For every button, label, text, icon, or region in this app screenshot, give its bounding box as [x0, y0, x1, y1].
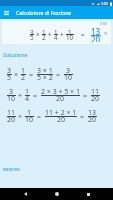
staticText: 3 — [9, 87, 14, 97]
staticText: 2 — [42, 33, 46, 41]
staticText: Calcolatore di Frazione — [16, 9, 72, 16]
staticText: = — [33, 91, 38, 101]
staticText: 4 — [25, 94, 30, 104]
staticText: 20 — [91, 34, 101, 42]
staticText: 10 — [64, 73, 73, 83]
staticText: Soluzione — [3, 51, 28, 58]
staticText: 10 — [7, 94, 16, 104]
staticText: 1 — [21, 66, 26, 76]
button[interactable]: INDIETRO — [1, 165, 23, 174]
staticText: × — [14, 70, 19, 80]
staticText: 20 — [91, 94, 100, 104]
staticText: 2 — [21, 73, 26, 83]
staticText: 20 — [88, 115, 97, 125]
staticText: + — [48, 30, 52, 38]
staticText: 0.65 — [100, 21, 108, 26]
staticText: 1 — [68, 28, 72, 36]
staticText: 10 — [66, 33, 74, 41]
staticText: 20 — [57, 115, 66, 125]
staticText: 1 — [42, 28, 46, 36]
staticText: = — [81, 30, 85, 38]
staticText: 1 — [25, 87, 30, 97]
staticText: 2 × 3 + 5 × 1 — [41, 87, 80, 97]
staticText: 3 × 1 — [37, 66, 53, 76]
staticText: 7:02 — [101, 1, 109, 6]
staticText: 4 — [54, 33, 58, 41]
staticText: × — [36, 30, 40, 38]
staticText: = — [56, 70, 61, 80]
staticText: 1 — [54, 28, 58, 36]
staticText: + — [60, 30, 64, 38]
staticText: 3 — [30, 28, 34, 36]
staticText: 11 + 2 × 1 — [45, 108, 77, 118]
staticText: 5 — [30, 33, 34, 41]
button[interactable]: Recents — [81, 188, 95, 200]
staticText: 3 — [66, 66, 71, 76]
staticText: % — [104, 31, 108, 37]
staticText: = — [80, 112, 85, 122]
staticText: 10 — [25, 115, 34, 125]
button[interactable]: Home — [50, 188, 64, 200]
button[interactable]: Menu — [0, 6, 13, 19]
staticText: = — [37, 112, 42, 122]
staticText: 11 — [7, 108, 16, 118]
button[interactable]: Back — [18, 188, 32, 200]
staticText: 20 — [56, 94, 65, 104]
staticText: 13 — [91, 26, 101, 37]
staticText: 3 — [7, 66, 12, 76]
staticText: 20 — [7, 115, 16, 125]
staticText: INDIETRO — [3, 167, 21, 172]
staticText: 5 — [7, 73, 12, 83]
staticText: = — [83, 91, 88, 101]
staticText: 13 — [88, 108, 97, 118]
staticText: 11 — [91, 87, 100, 97]
staticText: 5 × 2 — [37, 73, 53, 83]
staticText: = — [29, 70, 34, 80]
staticText: + — [18, 112, 23, 122]
staticText: 1 — [27, 108, 32, 118]
staticText: + — [18, 91, 23, 101]
